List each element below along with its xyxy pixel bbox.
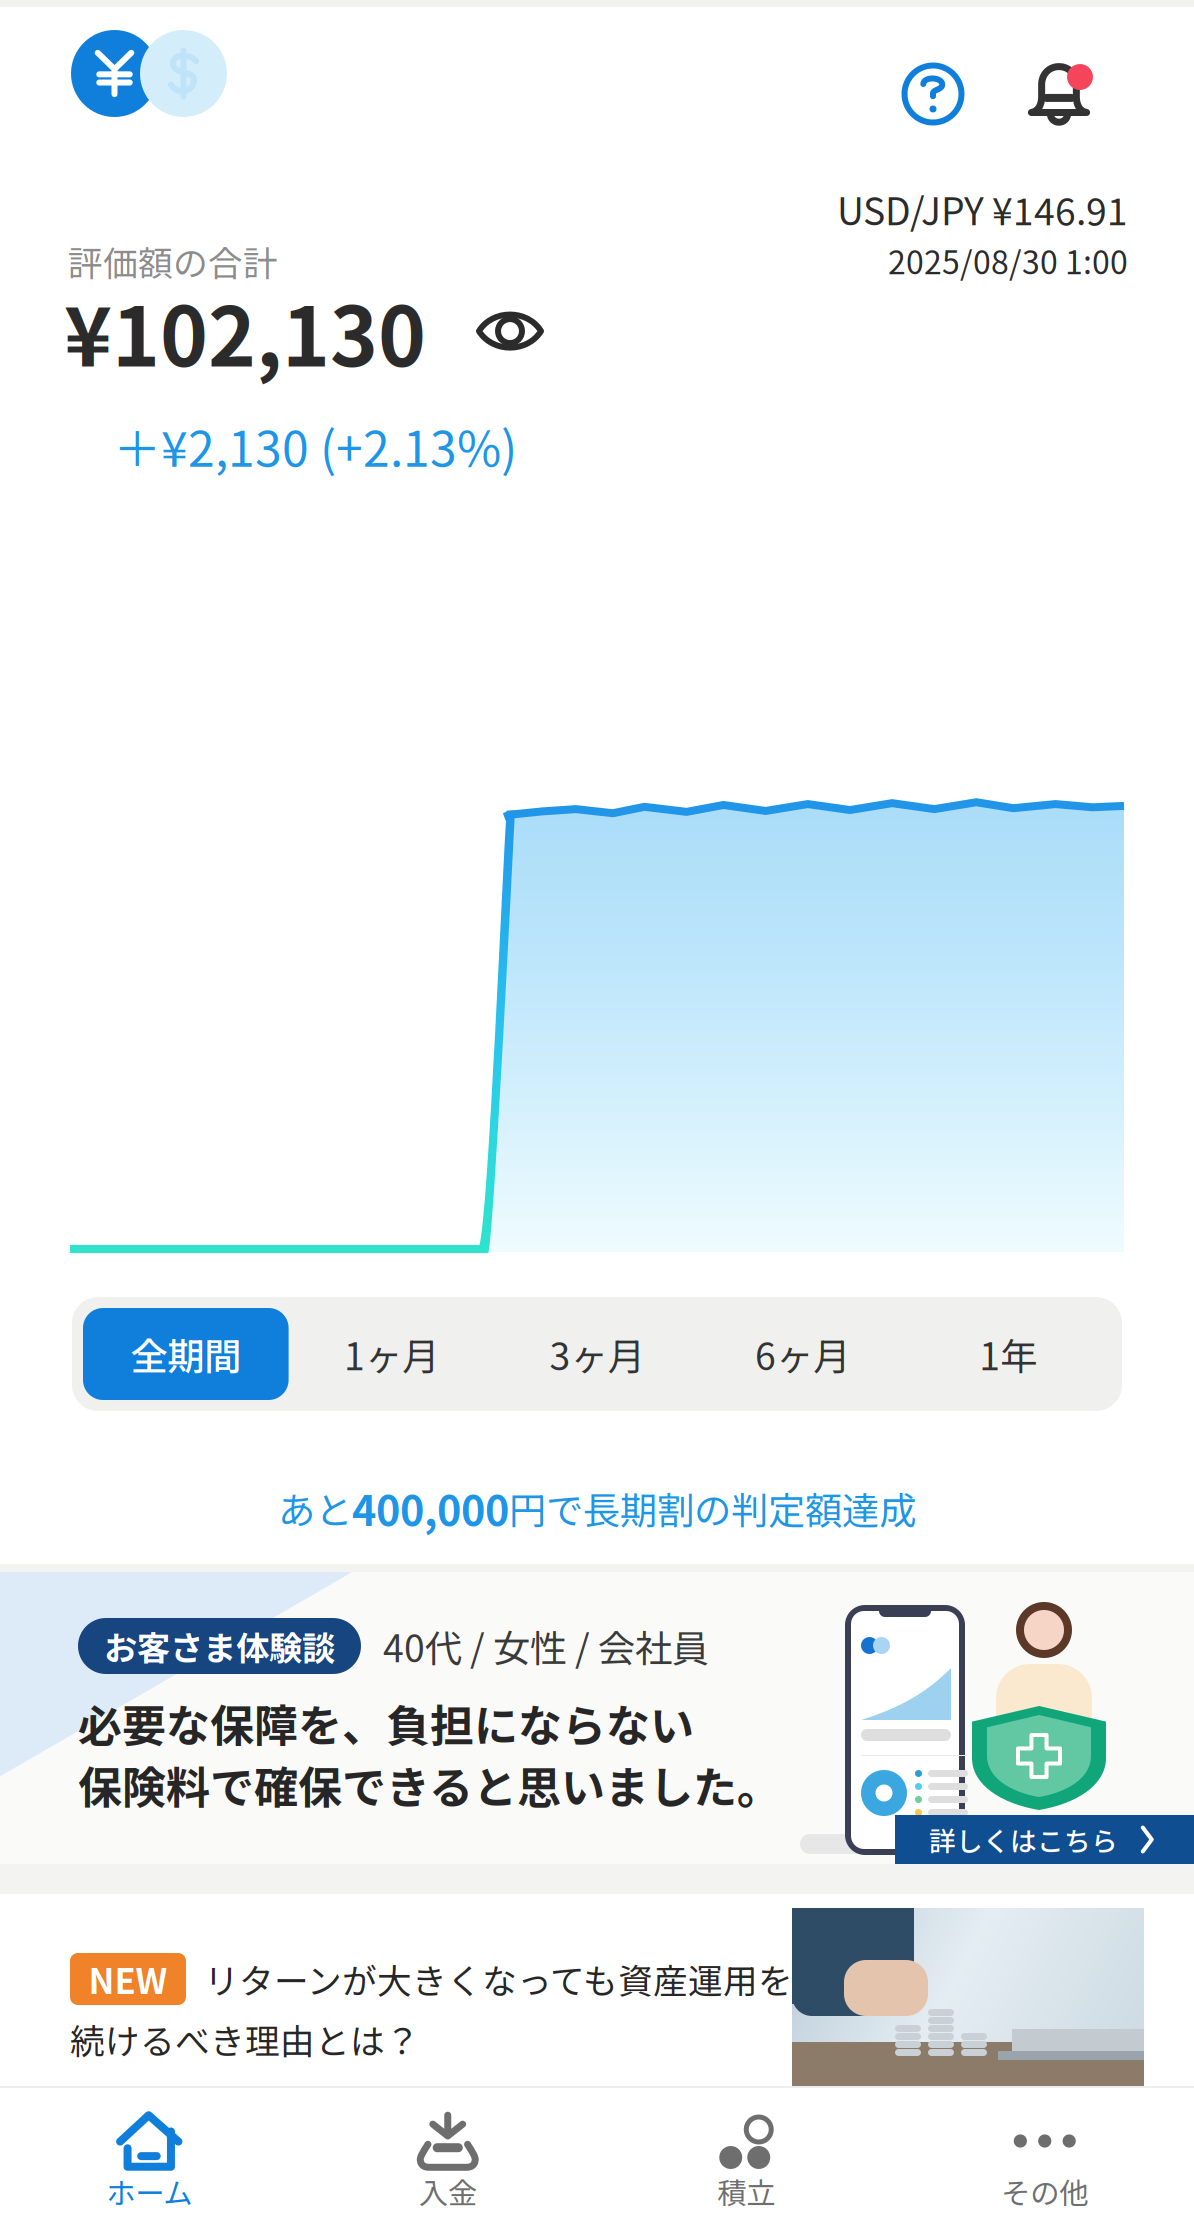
staticText: 詳しくはこちら [929,1820,1118,1859]
staticText: 3ヶ月 [549,1327,644,1381]
staticText: 入金 [419,2170,477,2212]
staticText: 400,000 [352,1478,509,1538]
staticText: ＋¥2,130 (+2.13%) [113,411,517,480]
button[interactable]: 1ヶ月 [289,1308,494,1400]
button[interactable]: 全期間 [83,1308,289,1400]
button[interactable]: 入金 [298,2088,597,2223]
staticText: USD/JPY ¥146.91 [837,182,1128,236]
staticText: あと [278,1481,352,1535]
staticText: 2025/08/30 1:00 [888,237,1128,283]
staticText: 必要な保障を、負担にならない [78,1691,694,1755]
staticText: ¥102,130 [64,272,426,390]
staticText: 保険料で確保できると思いました。 [78,1753,781,1816]
staticText: 円で長期割の判定額達成 [509,1481,916,1535]
staticText: その他 [1001,2170,1088,2212]
button[interactable] [0,7,227,150]
staticText: リターンが大きくなっても資産運用を [204,1954,793,2004]
staticText: ホーム [106,2170,192,2212]
button[interactable]: その他 [895,2088,1194,2223]
button[interactable]: NEW [0,1894,1194,2086]
button[interactable]: Notifications [1012,7,1106,141]
button[interactable]: 3ヶ月 [494,1308,700,1400]
staticText: 1ヶ月 [344,1327,439,1381]
button[interactable]: Help [886,7,980,141]
button[interactable]: Hide balance [470,299,550,363]
staticText: 6ヶ月 [755,1327,850,1381]
staticText: 積立 [717,2170,775,2212]
staticText: 40代 / 女性 / 会社員 [383,1619,709,1673]
staticText: 評価額の合計 [68,236,278,286]
button[interactable]: ホーム [0,2088,298,2223]
button[interactable]: 積立 [597,2088,895,2223]
button[interactable]: 6ヶ月 [700,1308,905,1400]
staticText: 全期間 [130,1327,241,1381]
staticText: お客さま体験談 [104,1622,335,1670]
staticText: 1年 [979,1327,1037,1381]
staticText: NEW [88,1954,167,2004]
button[interactable]: 1年 [905,1308,1111,1400]
staticText: 続けるべき理由とは？ [70,2014,420,2064]
button[interactable]: お客さま体験談 [0,1572,1194,1864]
